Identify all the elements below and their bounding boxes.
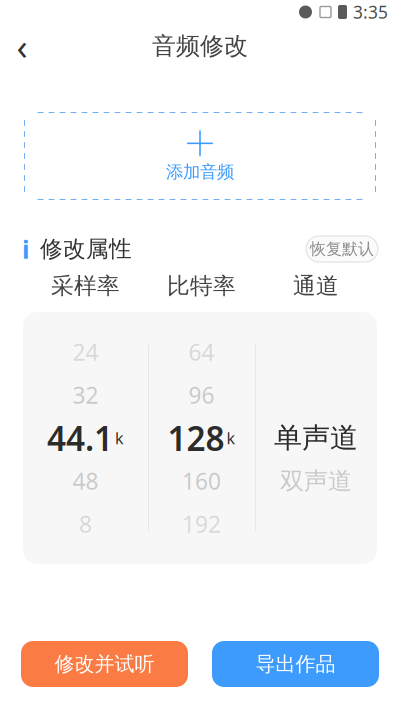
- button[interactable]: 返回: [0, 24, 44, 68]
- staticText: 3:35: [353, 0, 388, 23]
- staticText: 44.1: [47, 416, 113, 460]
- button[interactable]: 导出作品: [212, 641, 379, 687]
- staticText: 通道: [293, 272, 339, 300]
- button[interactable]: 添加音频: [23, 112, 377, 200]
- staticText: 48: [72, 466, 98, 496]
- staticText: k: [115, 427, 124, 449]
- staticText: 160: [182, 466, 221, 496]
- staticText: i: [22, 232, 30, 266]
- button[interactable]: 修改并试听: [21, 641, 188, 687]
- staticText: 音频修改: [152, 31, 248, 61]
- staticText: 64: [188, 337, 214, 367]
- staticText: 双声道: [280, 466, 352, 496]
- staticText: 96: [188, 380, 214, 410]
- staticText: 24: [72, 337, 98, 367]
- staticText: 8: [79, 509, 92, 539]
- staticText: 导出作品: [255, 652, 335, 676]
- staticText: 192: [182, 509, 221, 539]
- staticText: 修改并试听: [54, 652, 154, 676]
- button[interactable]: 恢复默认: [306, 236, 378, 262]
- staticText: 单声道: [274, 421, 358, 455]
- staticText: 恢复默认: [310, 239, 374, 259]
- staticText: 添加音频: [166, 161, 234, 183]
- staticText: ‹: [16, 22, 27, 70]
- staticText: 比特率: [167, 272, 236, 300]
- staticText: k: [226, 427, 235, 449]
- staticText: 修改属性: [40, 235, 132, 263]
- staticText: 32: [72, 380, 98, 410]
- staticText: 采样率: [51, 272, 120, 300]
- staticText: 128: [167, 416, 224, 460]
